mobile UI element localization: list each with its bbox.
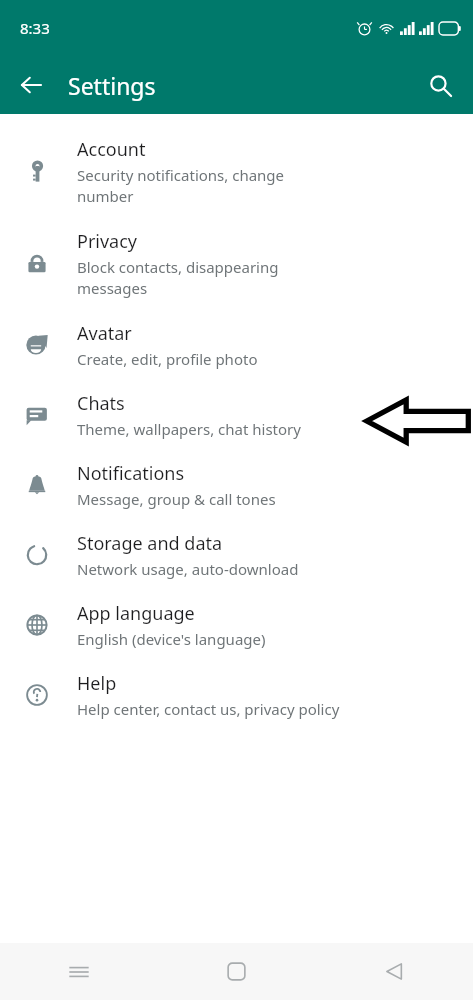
- staticText: English (device's language): [77, 629, 266, 649]
- staticText: 8:33: [20, 18, 50, 38]
- button[interactable]: Storage and data: [0, 520, 473, 590]
- button[interactable]: Avatar: [0, 310, 473, 380]
- staticText: Network usage, auto-download: [77, 559, 299, 579]
- button[interactable]: Recents: [0, 943, 157, 1000]
- staticText: Settings: [68, 70, 156, 101]
- button[interactable]: Privacy: [0, 218, 473, 310]
- staticText: Avatar: [77, 321, 132, 346]
- button[interactable]: Account: [0, 126, 473, 218]
- staticText: App language: [77, 601, 195, 626]
- staticText: Theme, wallpapers, chat history: [77, 419, 301, 439]
- button[interactable]: Search: [417, 62, 463, 108]
- staticText: Storage and data: [77, 531, 223, 556]
- staticText: Account: [77, 137, 146, 162]
- button[interactable]: Notifications: [0, 450, 473, 520]
- staticText: Help: [77, 671, 117, 696]
- staticText: Message, group & call tones: [77, 489, 276, 509]
- staticText: Help center, contact us, privacy policy: [77, 699, 340, 719]
- button[interactable]: Back: [315, 943, 473, 1000]
- staticText: Create, edit, profile photo: [77, 349, 258, 369]
- staticText: Chats: [77, 391, 125, 416]
- staticText: Security notifications, change number: [77, 165, 285, 207]
- button[interactable]: Chats: [0, 380, 473, 450]
- button[interactable]: Help: [0, 660, 473, 730]
- button[interactable]: App language: [0, 590, 473, 660]
- staticText: Notifications: [77, 461, 185, 486]
- button[interactable]: Back: [8, 62, 54, 108]
- staticText: Privacy: [77, 229, 138, 254]
- button[interactable]: Home: [157, 943, 315, 1000]
- staticText: Block contacts, disappearing messages: [77, 257, 279, 299]
